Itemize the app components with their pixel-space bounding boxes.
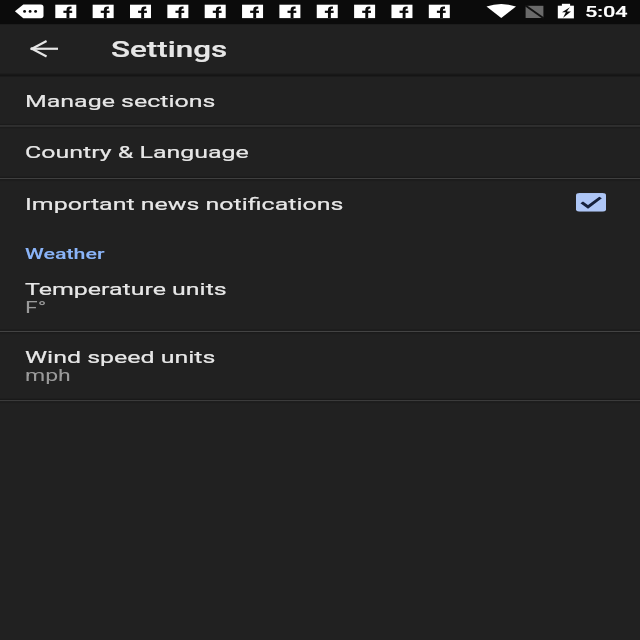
staticText: Country & Language: [25, 142, 249, 163]
button[interactable]: Temperature units: [0, 263, 640, 331]
button[interactable]: Country & Language: [0, 127, 640, 179]
staticText: Settings: [111, 37, 228, 62]
button[interactable]: Manage sections: [0, 76, 640, 126]
button[interactable]: Wind speed units: [0, 333, 640, 401]
staticText: Temperature units: [25, 279, 227, 300]
button[interactable]: Important news notifications, on: [566, 186, 615, 219]
staticText: Wind speed units: [25, 347, 216, 367]
staticText: F°: [25, 299, 47, 318]
staticText: Weather: [25, 245, 105, 262]
staticText: mph: [25, 366, 71, 385]
staticText: Manage sections: [25, 91, 216, 111]
staticText: 5:04: [585, 3, 628, 20]
button[interactable]: Important news notifications: [0, 180, 640, 232]
staticText: Important news notifications: [25, 194, 344, 214]
button[interactable]: Navigate up: [20, 31, 68, 69]
